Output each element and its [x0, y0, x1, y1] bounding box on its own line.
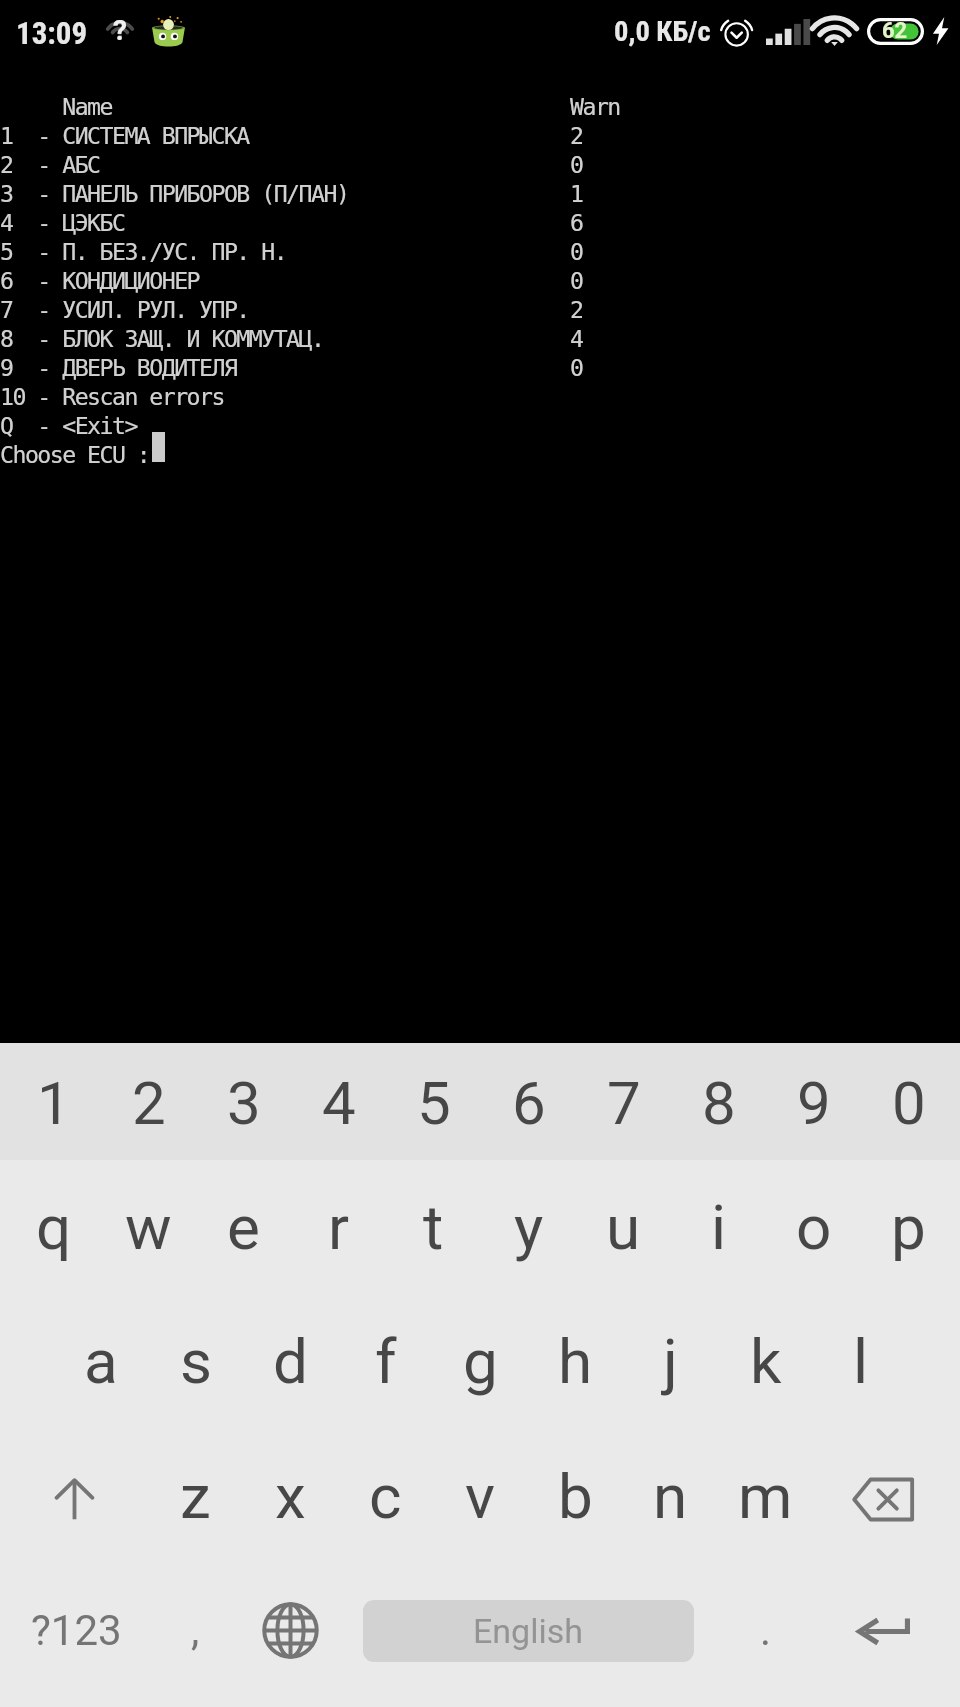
staticText: n [653, 1460, 688, 1533]
button[interactable]: 1 [6, 1043, 101, 1160]
button[interactable]: 2 [101, 1043, 196, 1160]
staticText: 9 [797, 1068, 831, 1138]
staticText: x [275, 1460, 306, 1533]
staticText: 1 [37, 1068, 71, 1138]
button[interactable]: u [576, 1160, 671, 1294]
button[interactable]: d [243, 1294, 338, 1428]
button[interactable]: 7 [576, 1043, 671, 1160]
button[interactable]: 6 [481, 1043, 576, 1160]
staticText: 2 [132, 1068, 166, 1138]
staticText: 0 [892, 1068, 926, 1138]
staticText: 1 - СИСТЕМА ВПРЫСКА [0, 122, 249, 149]
staticText: f [375, 1325, 397, 1398]
staticText: d [273, 1325, 308, 1398]
button[interactable]: s [148, 1294, 243, 1428]
staticText: 3 [227, 1068, 261, 1138]
staticText: 0,0 КБ/с [614, 15, 711, 48]
button[interactable]: t [386, 1160, 481, 1294]
button[interactable]: . [718, 1564, 813, 1707]
button[interactable]: h [528, 1294, 623, 1428]
staticText: 8 - БЛОК ЗАЩ. И КОММУТАЦ. [0, 325, 324, 352]
button[interactable]: e [196, 1160, 291, 1294]
staticText: a [84, 1325, 118, 1398]
button[interactable]: r [291, 1160, 386, 1294]
staticText: 5 - П. БЕЗ./УС. ПР. Н. [0, 238, 287, 265]
staticText: 0 [570, 238, 583, 265]
button[interactable]: j [623, 1294, 718, 1428]
staticText: 2 - АБС [0, 151, 100, 178]
staticText: r [328, 1191, 350, 1264]
staticText: 8 [702, 1068, 736, 1138]
button[interactable]: v [433, 1428, 528, 1564]
staticText: 4 - ЦЭКБС [0, 209, 125, 236]
staticText: 0 [570, 354, 583, 381]
button[interactable]: y [481, 1160, 576, 1294]
button[interactable]: 3 [196, 1043, 291, 1160]
staticText: j [663, 1325, 678, 1398]
staticText: Q - <Exit> [0, 412, 137, 439]
staticText: ?123 [31, 1606, 122, 1655]
staticText: 6 - КОНДИЦИОНЕР [0, 267, 200, 294]
button[interactable]: 8 [671, 1043, 766, 1160]
staticText: ? [113, 14, 127, 44]
button[interactable]: b [528, 1428, 623, 1564]
button[interactable]: p [861, 1160, 956, 1294]
button[interactable]: Shift [0, 1428, 148, 1564]
staticText: v [465, 1460, 496, 1533]
button[interactable]: z [148, 1428, 243, 1564]
button[interactable]: k [718, 1294, 813, 1428]
staticText: g [463, 1325, 498, 1398]
staticText: b [558, 1460, 593, 1533]
button[interactable]: a [53, 1294, 148, 1428]
button[interactable]: o [766, 1160, 861, 1294]
button[interactable]: m [718, 1428, 813, 1564]
button[interactable]: ?123 [0, 1564, 148, 1707]
button[interactable]: Change language [243, 1564, 338, 1707]
staticText: p [891, 1191, 926, 1264]
staticText: Warn [570, 93, 620, 120]
staticText: 62 [882, 18, 908, 44]
staticText: Name [0, 93, 112, 120]
staticText: c [369, 1460, 402, 1533]
staticText: z [180, 1460, 211, 1533]
button[interactable]: x [243, 1428, 338, 1564]
button[interactable]: 9 [766, 1043, 861, 1160]
button[interactable]: 5 [386, 1043, 481, 1160]
staticText: 4 [322, 1068, 356, 1138]
staticText: Choose ECU : [0, 441, 150, 468]
staticText: t [423, 1191, 444, 1264]
button[interactable]: g [433, 1294, 528, 1428]
staticText: l [853, 1325, 869, 1398]
button[interactable]: n [623, 1428, 718, 1564]
button[interactable]: f [338, 1294, 433, 1428]
staticText: h [558, 1325, 593, 1398]
button[interactable]: w [101, 1160, 196, 1294]
staticText: m [738, 1460, 793, 1533]
staticText: 1 [570, 180, 583, 207]
staticText: . [760, 1606, 772, 1655]
button[interactable]: 4 [291, 1043, 386, 1160]
staticText: 0 [570, 267, 583, 294]
staticText: , [191, 1606, 200, 1655]
staticText: 7 [607, 1068, 641, 1138]
button[interactable]: Backspace [813, 1428, 960, 1564]
staticText: o [796, 1191, 832, 1264]
staticText: k [750, 1325, 782, 1398]
button[interactable]: c [338, 1428, 433, 1564]
button[interactable]: , [148, 1564, 243, 1707]
staticText: e [227, 1191, 260, 1264]
button[interactable]: Enter [813, 1564, 960, 1707]
staticText: 6 [512, 1068, 546, 1138]
staticText: 0 [570, 151, 583, 178]
staticText: 5 [417, 1068, 451, 1138]
staticText: y [514, 1191, 544, 1264]
staticText: 2 [570, 122, 583, 149]
staticText: 9 - ДВЕРЬ ВОДИТЕЛЯ [0, 354, 237, 381]
button[interactable]: 0 [861, 1043, 956, 1160]
button[interactable]: English [338, 1564, 718, 1707]
staticText: w [125, 1191, 172, 1264]
staticText: s [180, 1325, 212, 1398]
button[interactable]: i [671, 1160, 766, 1294]
button[interactable]: q [6, 1160, 101, 1294]
button[interactable]: l [813, 1294, 908, 1428]
